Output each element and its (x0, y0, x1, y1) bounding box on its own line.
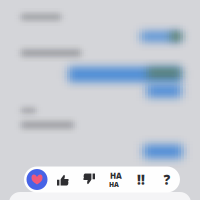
button[interactable]: Heart (24, 166, 50, 192)
button[interactable]: Thumbs up (50, 166, 76, 192)
button[interactable]: Question mark (154, 166, 180, 192)
staticText: ? (163, 171, 170, 188)
staticText: HA (109, 180, 119, 189)
button[interactable]: Thumbs down (76, 166, 102, 192)
staticText: !! (137, 171, 145, 188)
button[interactable]: Exclamation (128, 166, 154, 192)
button[interactable]: Haha (102, 166, 128, 192)
staticText: HA (110, 170, 122, 181)
